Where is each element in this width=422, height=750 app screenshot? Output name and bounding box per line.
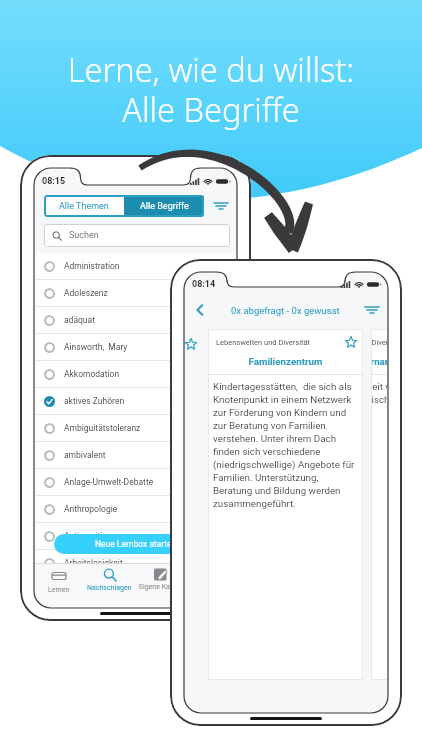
button[interactable]: Back bbox=[189, 299, 211, 321]
staticText: Anlage-Umwelt-Debatte bbox=[64, 477, 154, 487]
staticText: Anthropologie bbox=[64, 504, 118, 514]
button[interactable]: Nachschlagen bbox=[84, 564, 135, 592]
staticText: Administration bbox=[64, 261, 120, 271]
staticText: adäquat bbox=[64, 315, 95, 325]
staticText: Familienzentrum bbox=[208, 356, 363, 367]
staticText: 0x abgefragt - 0x gewusst bbox=[231, 305, 340, 316]
staticText: Alle Themen bbox=[59, 201, 109, 212]
staticText: 08:15 bbox=[42, 176, 66, 187]
button[interactable]: Akkomodation bbox=[44, 361, 237, 387]
staticText: Adoleszenz bbox=[64, 288, 108, 298]
button[interactable]: aktives Zuhören bbox=[44, 388, 237, 414]
button[interactable]: adäquat bbox=[44, 307, 237, 333]
staticText: Ambiguitätstoleranz bbox=[64, 423, 141, 433]
staticText: Neue Lernbox starten bbox=[95, 539, 177, 549]
staticText: Eigene Karten bbox=[139, 583, 183, 591]
button[interactable]: Anlage-Umwelt-Debatte bbox=[44, 469, 237, 495]
staticText: Alle Begriffe bbox=[140, 201, 189, 212]
staticText: Lebenswelten und Diversität bbox=[216, 338, 310, 347]
staticText: Ainsworth, Mary bbox=[64, 342, 128, 352]
staticText: aktives Zuhören bbox=[64, 396, 125, 406]
staticText: Akkomodation bbox=[64, 369, 120, 379]
button[interactable]: Mehr bbox=[186, 564, 237, 592]
button[interactable]: Alle Themen bbox=[44, 195, 124, 217]
button[interactable]: Ainsworth, Mary bbox=[44, 334, 237, 360]
button[interactable]: Antisemitismus bbox=[44, 523, 237, 549]
button[interactable]: Administration bbox=[44, 253, 237, 279]
button[interactable]: Anthropologie bbox=[44, 496, 237, 522]
button[interactable]: Arbeitslosigkeit bbox=[44, 550, 237, 576]
button[interactable]: Filter bbox=[210, 195, 232, 217]
button[interactable]: Adoleszenz bbox=[44, 280, 237, 306]
button[interactable]: Filter bbox=[361, 299, 383, 321]
staticText: Lerne, wie du willst: Alle Begriffe bbox=[0, 47, 422, 131]
staticText: Mehr bbox=[203, 584, 220, 592]
staticText: Antisemitismus bbox=[64, 531, 124, 541]
staticText: ambivalent bbox=[64, 450, 106, 460]
staticText: Lernen bbox=[48, 586, 70, 594]
button[interactable]: Ambiguitätstoleranz bbox=[44, 415, 237, 441]
staticText: Unter Elternarbeit versteht man Sozialpä… bbox=[371, 381, 388, 419]
button[interactable]: Lernen bbox=[34, 564, 84, 594]
button[interactable]: Alle Begriffe bbox=[124, 195, 204, 217]
staticText: Arbeitslosigkeit bbox=[64, 558, 123, 568]
button[interactable]: ambivalent bbox=[44, 442, 237, 468]
button[interactable]: Suchen bbox=[44, 224, 230, 247]
staticText: 08:14 bbox=[192, 279, 216, 290]
staticText: Nachschlagen bbox=[87, 584, 132, 592]
staticText: Kindertagesstätten, die sich als Knotenp… bbox=[213, 381, 359, 510]
button[interactable]: Eigene Karten bbox=[135, 564, 186, 591]
staticText: Elternarbeit bbox=[371, 356, 388, 367]
button[interactable]: Neue Lernbox starten bbox=[54, 534, 217, 554]
staticText: Lebenswelten und Diversität bbox=[371, 338, 388, 347]
button[interactable]: Lebenswelten und Diversität bbox=[208, 329, 363, 680]
staticText: Suchen bbox=[69, 230, 99, 241]
